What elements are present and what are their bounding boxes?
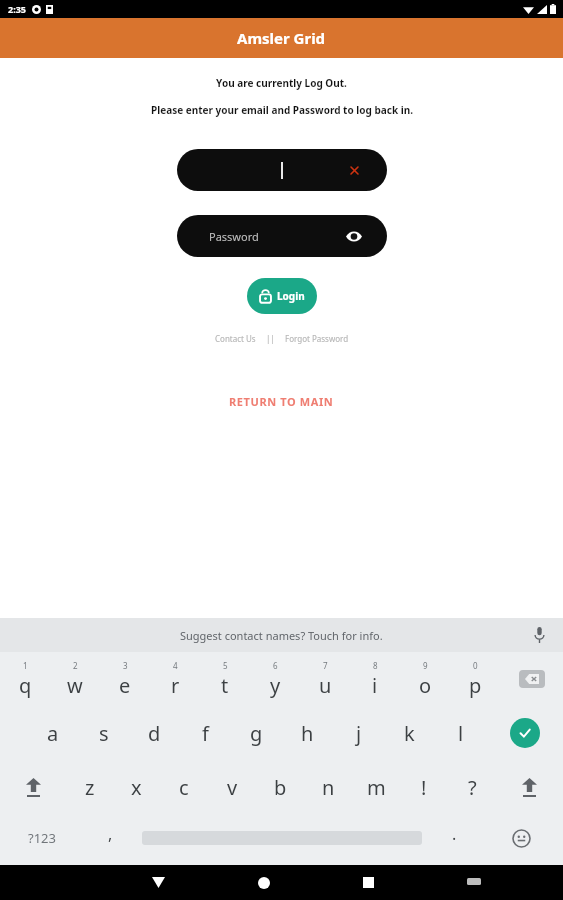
button[interactable]: 0	[450, 652, 500, 706]
button[interactable]: b	[256, 760, 304, 814]
button[interactable]: Voice input	[529, 625, 549, 645]
button[interactable]: c	[160, 760, 208, 814]
button[interactable]: Shift	[0, 760, 66, 814]
staticText: RETURN TO MAIN	[229, 394, 334, 409]
staticText: s	[99, 720, 109, 747]
button[interactable]: a	[27, 706, 78, 760]
button[interactable]: 2	[50, 652, 100, 706]
button[interactable]: 8	[350, 652, 400, 706]
staticText: p	[469, 672, 482, 699]
button[interactable]: Back	[106, 865, 211, 900]
button[interactable]: j	[333, 706, 384, 760]
button[interactable]: 1	[0, 652, 50, 706]
staticText: 4	[173, 660, 178, 671]
button[interactable]: Contact Us	[213, 331, 258, 346]
staticText: f	[202, 720, 209, 747]
button[interactable]: Shift	[496, 760, 563, 814]
staticText: h	[301, 720, 314, 747]
staticText: y	[270, 672, 281, 699]
staticText: v	[227, 774, 238, 801]
staticText: 2:35	[8, 3, 26, 15]
staticText: g	[250, 720, 263, 747]
staticText: .	[452, 823, 457, 845]
staticText: ||	[266, 333, 275, 344]
button[interactable]: 7	[300, 652, 350, 706]
button[interactable]: Emoji	[480, 814, 563, 862]
staticText: w	[67, 672, 83, 699]
staticText: 5	[223, 660, 228, 671]
button[interactable]: Login	[247, 278, 317, 314]
button[interactable]: .	[428, 814, 480, 862]
staticText: 8	[373, 660, 378, 671]
button[interactable]: Recents	[316, 865, 421, 900]
staticText: ?	[468, 774, 477, 801]
button[interactable]: m	[352, 760, 400, 814]
staticText: e	[119, 672, 131, 699]
button[interactable]: 4	[150, 652, 200, 706]
staticText: l	[458, 720, 464, 747]
button[interactable]: Show password	[343, 225, 365, 247]
staticText: Amsler Grid	[237, 28, 326, 48]
staticText: b	[274, 774, 287, 801]
button[interactable]: d	[129, 706, 180, 760]
button[interactable]: Home	[211, 865, 316, 900]
button[interactable]: Hide keyboard	[421, 865, 526, 900]
staticText: 3	[123, 660, 128, 671]
button[interactable]: Password	[177, 215, 387, 257]
button[interactable]: 3	[100, 652, 150, 706]
button[interactable]: 9	[400, 652, 450, 706]
staticText: x	[131, 774, 142, 801]
button[interactable]: Space	[136, 814, 428, 862]
staticText: m	[367, 774, 386, 801]
staticText: 9	[423, 660, 428, 671]
staticText: c	[179, 774, 189, 801]
button[interactable]: ?123	[0, 814, 84, 862]
button[interactable]: n	[304, 760, 352, 814]
staticText: 6	[273, 660, 278, 671]
button[interactable]: RETURN TO MAIN	[221, 390, 342, 413]
staticText: ,	[108, 823, 113, 845]
staticText: u	[319, 672, 332, 699]
button[interactable]: !	[400, 760, 448, 814]
staticText: Contact Us	[215, 333, 256, 344]
staticText: d	[148, 720, 161, 747]
staticText: z	[85, 774, 95, 801]
button[interactable]: v	[208, 760, 256, 814]
staticText: Please enter your email and Password to …	[151, 103, 413, 117]
staticText: 0	[473, 660, 478, 671]
staticText: 2	[73, 660, 78, 671]
staticText: 7	[323, 660, 328, 671]
button[interactable]: s	[78, 706, 129, 760]
button[interactable]: Clear	[177, 149, 387, 191]
button[interactable]: f	[180, 706, 231, 760]
staticText: k	[404, 720, 415, 747]
staticText: a	[47, 720, 59, 747]
button[interactable]: h	[282, 706, 333, 760]
staticText: n	[322, 774, 335, 801]
staticText: i	[372, 672, 378, 699]
button[interactable]: x	[113, 760, 160, 814]
staticText: You are currently Log Out.	[216, 76, 347, 90]
staticText: j	[356, 720, 362, 747]
staticText: q	[19, 672, 32, 699]
button[interactable]: 5	[200, 652, 250, 706]
staticText: Suggest contact names? Touch for info.	[180, 628, 383, 643]
button[interactable]: ,	[84, 814, 136, 862]
button[interactable]: k	[384, 706, 435, 760]
button[interactable]: z	[66, 760, 113, 814]
staticText: Password	[209, 229, 259, 244]
button[interactable]: Forgot Password	[283, 331, 351, 346]
button[interactable]: ?	[448, 760, 496, 814]
staticText: ?123	[28, 829, 56, 847]
button[interactable]: Backspace	[500, 652, 563, 706]
staticText: r	[171, 672, 180, 699]
staticText: !	[421, 774, 427, 801]
staticText: Forgot Password	[285, 333, 349, 344]
staticText: t	[221, 672, 229, 699]
button[interactable]: Clear	[345, 161, 363, 179]
staticText: Login	[277, 289, 305, 303]
button[interactable]: Enter	[486, 706, 563, 760]
button[interactable]: 6	[250, 652, 300, 706]
button[interactable]: g	[231, 706, 282, 760]
button[interactable]: l	[435, 706, 486, 760]
